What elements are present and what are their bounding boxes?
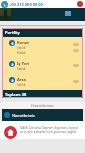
button[interactable]: Call <box>1 1 8 8</box>
staticText: Kiralık <box>17 51 26 55</box>
button[interactable]: Portföy <box>2 28 83 37</box>
button[interactable]: Konut <box>2 37 83 58</box>
staticText: Satılık <box>17 67 26 71</box>
staticText: Hizmetlerimiz <box>31 103 54 108</box>
button[interactable]: İş Yeri <box>2 58 83 74</box>
staticText: Portföy <box>5 30 20 35</box>
staticText: DASK Zorunlu Deprem Sigortası, konut ve … <box>20 126 82 134</box>
staticText: Toplam: 38 <box>5 92 27 97</box>
button[interactable]: Hizmetlerimiz <box>2 109 83 121</box>
button[interactable]: Arsa <box>2 74 83 90</box>
staticText: Konut <box>17 40 30 45</box>
staticText: İş Yeri <box>17 61 30 66</box>
staticText: Arsa <box>17 77 26 82</box>
staticText: +90 212 000 00 00 <box>9 2 43 7</box>
button[interactable]: Profile <box>77 1 83 7</box>
staticText: Satılık <box>17 83 26 87</box>
staticText: Satılık <box>17 46 26 50</box>
staticText: Hizmetlerimiz <box>12 113 35 118</box>
